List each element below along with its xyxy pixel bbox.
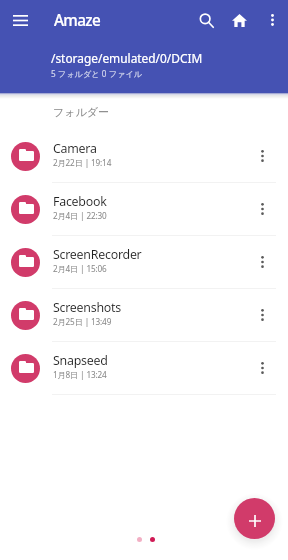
staticText: Snapseed (53, 352, 108, 369)
button[interactable]: Item options (245, 139, 279, 173)
button[interactable]: Item options (245, 351, 279, 385)
button[interactable]: Menu (0, 0, 41, 40)
staticText: ScreenRecorder (53, 246, 142, 263)
button[interactable]: Home (223, 2, 256, 38)
staticText: 5 フォルダと 0 ファイル (51, 68, 143, 79)
staticText: 2月4日 | 22:30 (53, 210, 107, 221)
staticText: Amaze (54, 10, 101, 31)
button[interactable]: More options (256, 2, 288, 38)
staticText: Screenshots (53, 299, 122, 316)
staticText: 2月4日 | 15:06 (53, 263, 107, 274)
button[interactable]: Item options (245, 192, 279, 226)
button[interactable]: Item options (245, 298, 279, 332)
staticText: Facebook (53, 193, 107, 210)
staticText: 1月8日 | 13:24 (53, 369, 107, 380)
button[interactable]: Item options (245, 245, 279, 279)
staticText: Camera (53, 140, 97, 157)
staticText: /storage/emulated/0/DCIM (51, 50, 203, 66)
button[interactable]: Add (234, 498, 275, 539)
staticText: フォルダー (53, 105, 110, 119)
button[interactable]: Snapseed (0, 342, 288, 395)
staticText: 2月25日 | 13:49 (53, 316, 112, 327)
button[interactable]: ScreenRecorder (0, 236, 288, 289)
button[interactable]: Screenshots (0, 289, 288, 342)
button[interactable]: Search (190, 2, 223, 38)
button[interactable]: Facebook (0, 183, 288, 236)
staticText: 2月22日 | 19:14 (53, 157, 112, 168)
button[interactable]: Camera (0, 130, 288, 183)
